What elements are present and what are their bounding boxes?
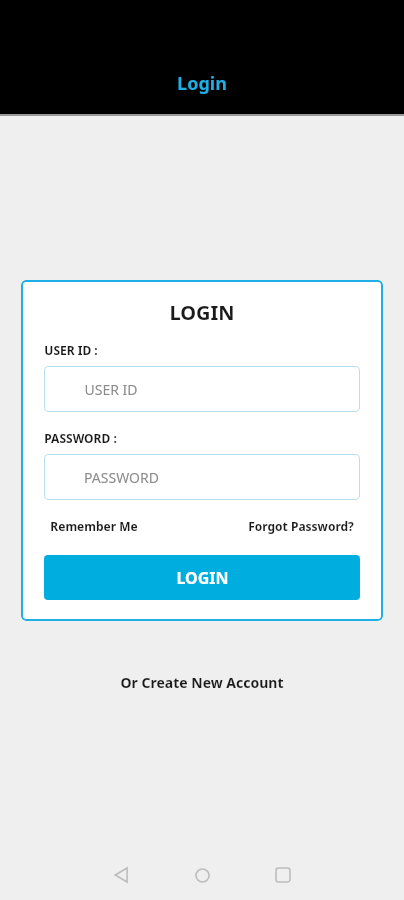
button[interactable]: Remember Me [44,514,144,538]
staticText: PASSWORD [84,468,159,487]
button[interactable]: Forgot Password? [242,514,360,538]
button[interactable]: Or Create New Account [110,667,294,698]
staticText: PASSWORD : [44,430,117,446]
button[interactable]: Back [98,851,146,899]
staticText: USER ID [84,380,138,399]
staticText: Forgot Password? [248,518,354,534]
staticText: USER ID : [44,342,98,358]
staticText: Login [177,71,227,96]
button[interactable]: PASSWORD [44,454,360,500]
staticText: Or Create New Account [120,673,284,692]
button[interactable]: Recents [259,851,307,899]
button[interactable]: LOGIN [44,555,360,600]
staticText: Remember Me [50,518,138,534]
staticText: LOGIN [176,567,229,589]
button[interactable]: USER ID [44,366,360,412]
staticText: LOGIN [169,299,235,326]
button[interactable]: Home [178,851,226,899]
